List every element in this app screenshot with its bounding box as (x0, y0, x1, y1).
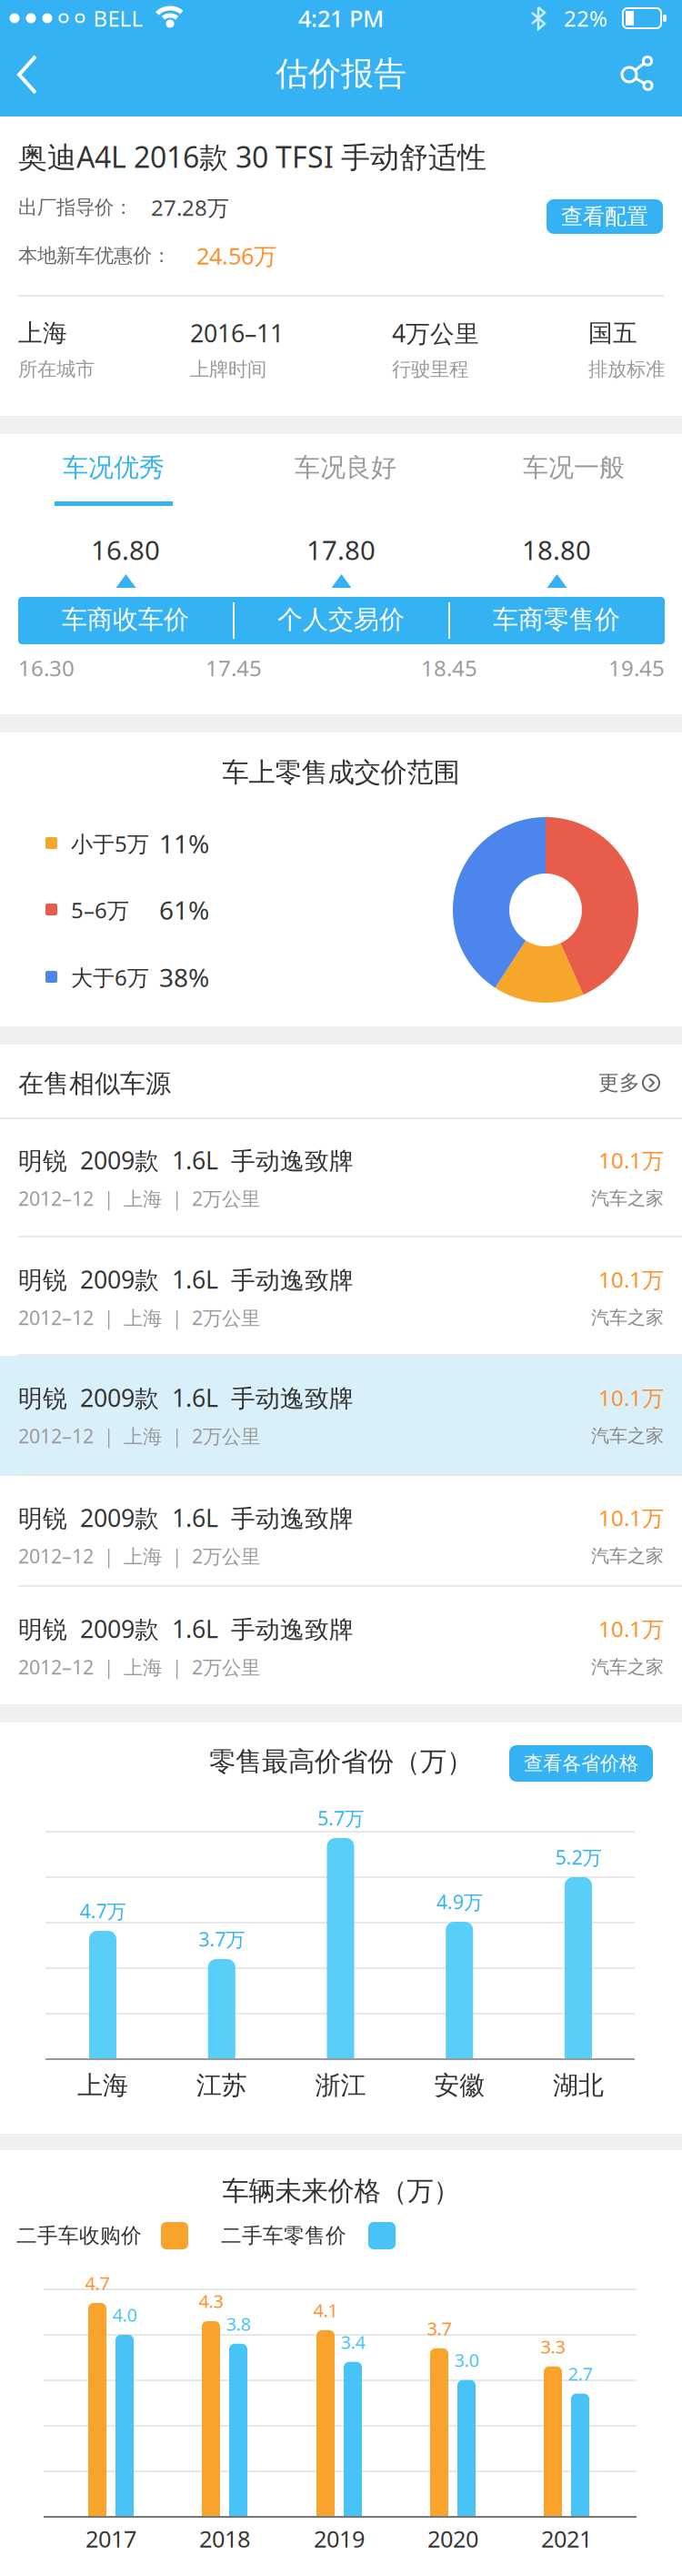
staticText: 车商零售价 (493, 604, 620, 635)
button[interactable]: 明锐 2009款 1.6L 手动逸致牌 (0, 1237, 682, 1356)
staticText: 16.30 (18, 653, 75, 682)
staticText: 车况优秀 (63, 452, 165, 483)
staticText: 安徽 (434, 2070, 485, 2101)
staticText: 3.8 (226, 2312, 251, 2336)
staticText: 江苏 (196, 2070, 247, 2101)
staticText: 4万公里 (392, 317, 479, 349)
staticText: 车商收车价 (62, 604, 189, 635)
staticText: 汽车之家 (591, 1306, 664, 1329)
staticText: 车况良好 (295, 452, 396, 483)
button[interactable]: 返回 (0, 51, 55, 98)
staticText: 3.7 (427, 2316, 451, 2340)
staticText: 车上零售成交价范围 (222, 756, 460, 789)
button[interactable]: 查看各省价格 (509, 1745, 653, 1782)
button[interactable]: 分享 (617, 53, 662, 96)
button[interactable]: 车况一般 (474, 436, 674, 500)
staticText: 4.0 (112, 2303, 137, 2327)
staticText: 二手车收购价 (16, 2223, 142, 2248)
staticText: 汽车之家 (591, 1187, 664, 1210)
staticText: 2012–12 ｜ 上海 ｜ 2万公里 (18, 1543, 260, 1569)
staticText: 4:21 PM (298, 3, 384, 33)
staticText: 10.1万 (598, 1146, 664, 1175)
staticText: 10.1万 (598, 1503, 664, 1532)
button[interactable]: 明锐 2009款 1.6L 手动逸致牌 (0, 1587, 682, 1704)
staticText: 10.1万 (598, 1383, 664, 1412)
button[interactable]: 明锐 2009款 1.6L 手动逸致牌 (0, 1356, 682, 1476)
staticText: 10.1万 (598, 1265, 664, 1294)
staticText: 4.7 (85, 2271, 110, 2295)
staticText: 本地新车优惠价： (18, 244, 171, 268)
staticText: 明锐 2009款 1.6L 手动逸致牌 (18, 1263, 354, 1295)
staticText: 10.1万 (598, 1614, 664, 1643)
staticText: 2012–12 ｜ 上海 ｜ 2万公里 (18, 1654, 260, 1680)
staticText: 上海 (18, 318, 67, 348)
staticText: 18.80 (522, 532, 591, 567)
staticText: 汽车之家 (591, 1545, 664, 1567)
staticText: 明锐 2009款 1.6L 手动逸致牌 (18, 1502, 354, 1534)
staticText: 零售最高价省份（万） (209, 1745, 473, 1778)
staticText: 汽车之家 (591, 1656, 664, 1678)
staticText: 18.45 (421, 653, 477, 682)
staticText: 17.45 (206, 653, 262, 682)
staticText: 4.3 (199, 2289, 223, 2313)
staticText: BELL (93, 4, 143, 33)
staticText: 明锐 2009款 1.6L 手动逸致牌 (18, 1613, 354, 1645)
staticText: 2012–12 ｜ 上海 ｜ 2万公里 (18, 1423, 260, 1449)
staticText: 在售相似车源 (18, 1068, 171, 1099)
button[interactable]: 查看配置 (547, 199, 663, 234)
staticText: 5.7万 (317, 1805, 364, 1831)
staticText: 浙江 (315, 2070, 366, 2101)
staticText: 2019 (314, 2523, 365, 2554)
staticText: 2.7 (568, 2362, 592, 2386)
staticText: 大于6万 (71, 963, 149, 992)
staticText: 2017 (85, 2523, 136, 2554)
button[interactable]: 更多 (580, 1056, 671, 1110)
button[interactable]: 车况良好 (246, 436, 446, 500)
staticText: 27.28万 (151, 193, 229, 222)
staticText: 估价报告 (276, 54, 406, 94)
staticText: 16.80 (91, 532, 160, 567)
staticText: 查看各省价格 (524, 1752, 638, 1775)
staticText: 2012–12 ｜ 上海 ｜ 2万公里 (18, 1185, 260, 1211)
staticText: 3.4 (341, 2330, 365, 2354)
staticText: 湖北 (553, 2070, 604, 2101)
staticText: 11% (159, 827, 209, 860)
staticText: 排放标准 (588, 358, 665, 381)
staticText: 查看配置 (561, 203, 648, 230)
staticText: 汽车之家 (591, 1425, 664, 1447)
staticText: 3.0 (454, 2348, 479, 2372)
staticText: 4.1 (313, 2298, 338, 2322)
staticText: 19.45 (608, 653, 665, 682)
staticText: 2020 (427, 2523, 478, 2554)
staticText: 2012–12 ｜ 上海 ｜ 2万公里 (18, 1305, 260, 1330)
staticText: 2021 (541, 2523, 592, 2554)
button[interactable]: 车况优秀 (14, 436, 214, 500)
staticText: 3.7万 (198, 1926, 245, 1952)
staticText: 38% (159, 960, 209, 994)
staticText: 上海 (77, 2070, 128, 2101)
staticText: 4.7万 (80, 1898, 126, 1924)
staticText: 更多 (598, 1070, 640, 1095)
staticText: 5–6万 (71, 895, 129, 924)
staticText: 明锐 2009款 1.6L 手动逸致牌 (18, 1144, 354, 1176)
staticText: 车况一般 (523, 452, 625, 483)
staticText: 上牌时间 (190, 358, 266, 381)
staticText: 奥迪A4L 2016款 30 TFSI 手动舒适性 (18, 137, 486, 176)
staticText: 61% (159, 893, 209, 927)
staticText: 个人交易价 (277, 604, 405, 635)
button[interactable]: 明锐 2009款 1.6L 手动逸致牌 (0, 1476, 682, 1587)
staticText: 小于5万 (71, 829, 149, 858)
staticText: 2016–11 (190, 317, 284, 349)
staticText: 明锐 2009款 1.6L 手动逸致牌 (18, 1382, 354, 1414)
staticText: 所在城市 (18, 358, 95, 381)
staticText: 行驶里程 (392, 358, 468, 381)
staticText: 车辆未来价格（万） (222, 2175, 460, 2207)
staticText: 出厂指导价： (18, 196, 133, 219)
button[interactable]: 明锐 2009款 1.6L 手动逸致牌 (0, 1118, 682, 1237)
staticText: 4.9万 (436, 1889, 483, 1915)
staticText: 3.3 (541, 2334, 565, 2359)
staticText: 22% (564, 4, 607, 33)
staticText: 24.56万 (196, 240, 276, 271)
staticText: 国五 (588, 318, 637, 348)
staticText: 17.80 (306, 532, 376, 567)
